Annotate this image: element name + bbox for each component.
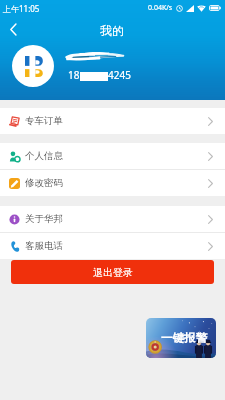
- button[interactable]: 退出登录: [11, 260, 214, 284]
- button[interactable]: 修改密码: [0, 170, 225, 196]
- staticText: 客服电话: [25, 240, 63, 252]
- staticText: 一键报警: [161, 331, 207, 345]
- staticText: 4245: [108, 68, 131, 82]
- button[interactable]: 客服电话: [0, 233, 225, 259]
- staticText: 修改密码: [25, 177, 63, 189]
- staticText: 专车订单: [25, 115, 63, 127]
- staticText: 18: [68, 68, 80, 82]
- staticText: 我的: [100, 23, 124, 38]
- button[interactable]: 专车订单: [0, 108, 225, 134]
- staticText: 上午11:05: [3, 3, 40, 14]
- staticText: 关于华邦: [25, 213, 63, 225]
- button[interactable]: Avatar: [12, 45, 54, 87]
- button[interactable]: Back: [2, 18, 24, 40]
- staticText: 0.04K/s: [148, 3, 173, 13]
- button[interactable]: 个人信息: [0, 143, 225, 169]
- staticText: 退出登录: [93, 266, 133, 279]
- button[interactable]: 关于华邦: [0, 206, 225, 232]
- staticText: 个人信息: [25, 150, 63, 162]
- button[interactable]: 一键报警: [146, 318, 216, 358]
